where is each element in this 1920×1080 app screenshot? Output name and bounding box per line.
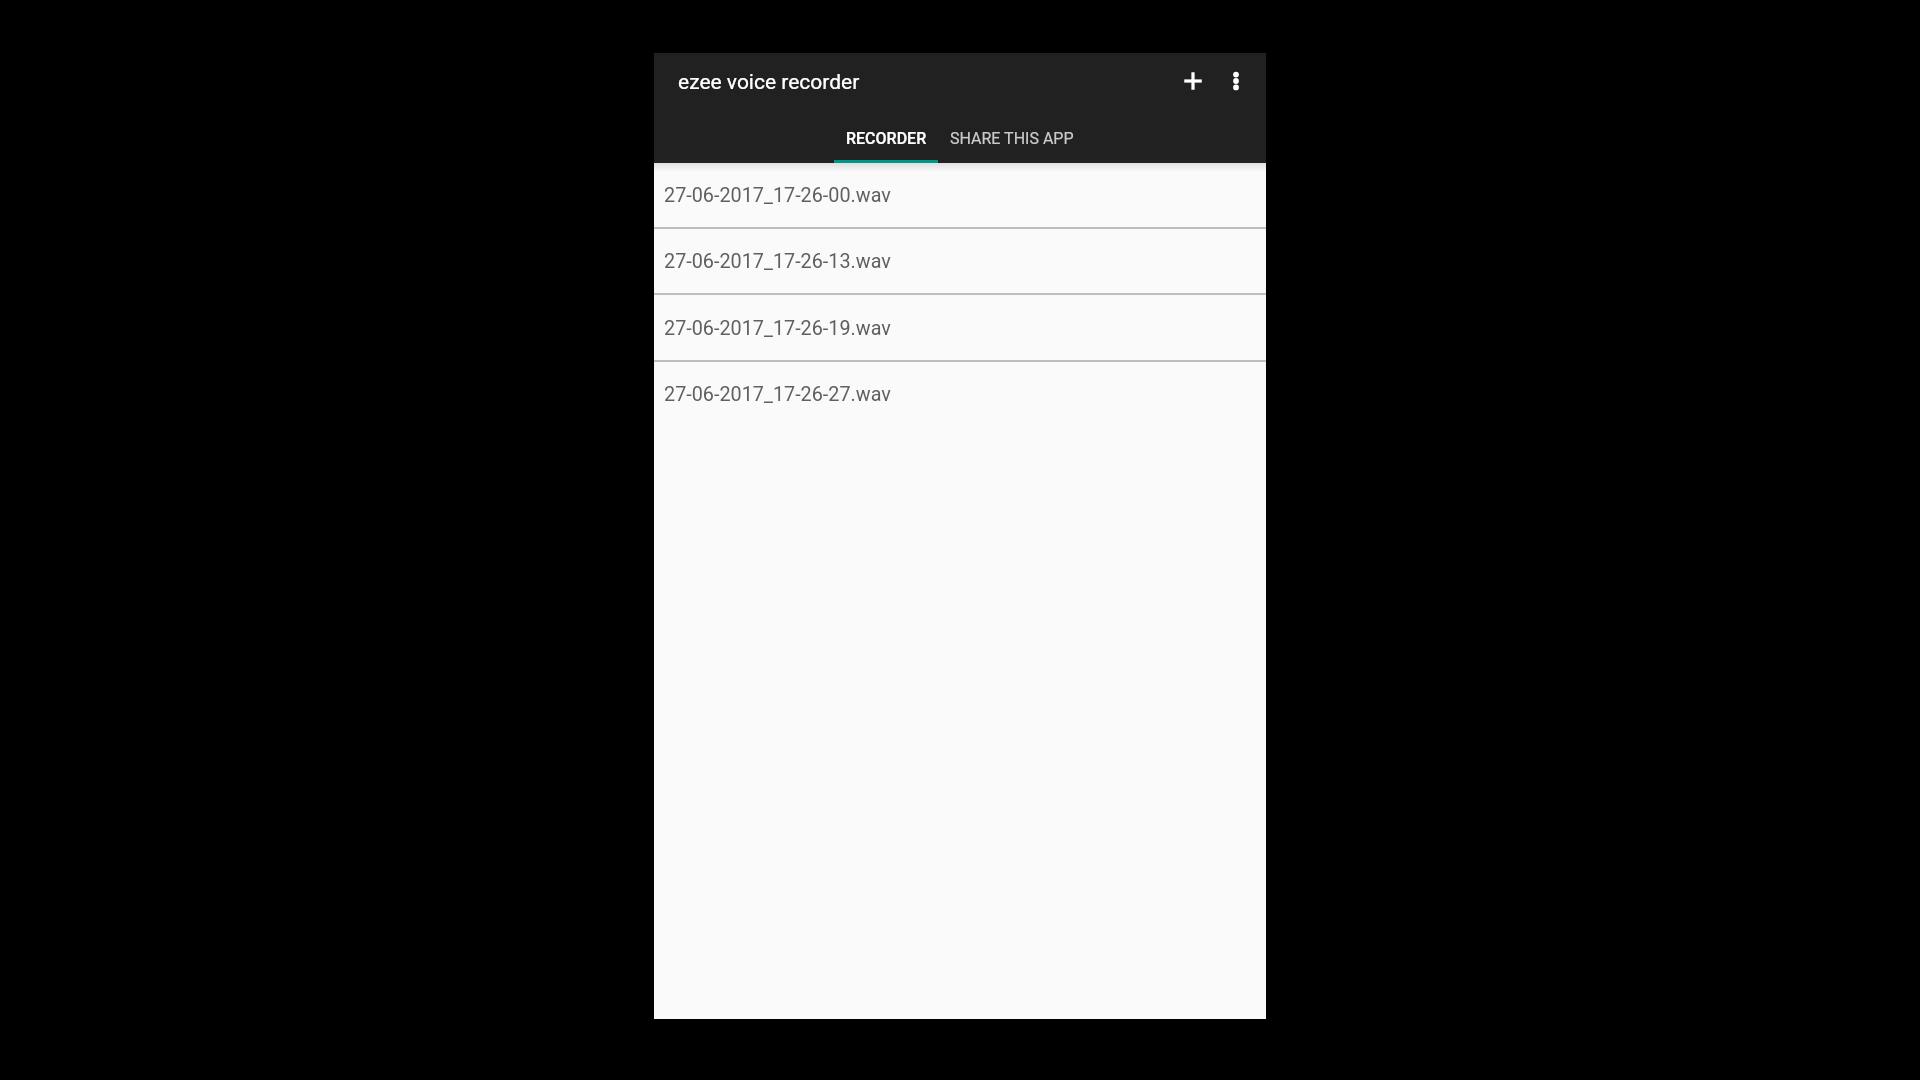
staticText: 27-06-2017_17-26-19.wav [664, 317, 891, 340]
staticText: RECORDER [846, 129, 927, 148]
staticText: ezee voice recorder [678, 70, 860, 95]
button[interactable]: 27-06-2017_17-26-13.wav [654, 229, 1266, 295]
button[interactable]: 27-06-2017_17-26-19.wav [654, 296, 1266, 362]
button[interactable]: SHARE THIS APP [938, 109, 1086, 163]
staticText: 27-06-2017_17-26-13.wav [664, 250, 891, 273]
button[interactable]: 27-06-2017_17-26-27.wav [654, 362, 1266, 428]
button[interactable]: RECORDER [834, 109, 938, 163]
staticText: SHARE THIS APP [950, 129, 1074, 148]
button[interactable]: More options [1212, 57, 1260, 105]
button[interactable]: 27-06-2017_17-26-00.wav [654, 163, 1266, 229]
staticText: 27-06-2017_17-26-00.wav [664, 184, 891, 207]
staticText: 27-06-2017_17-26-27.wav [664, 383, 891, 406]
button[interactable]: New recording [1174, 57, 1212, 105]
